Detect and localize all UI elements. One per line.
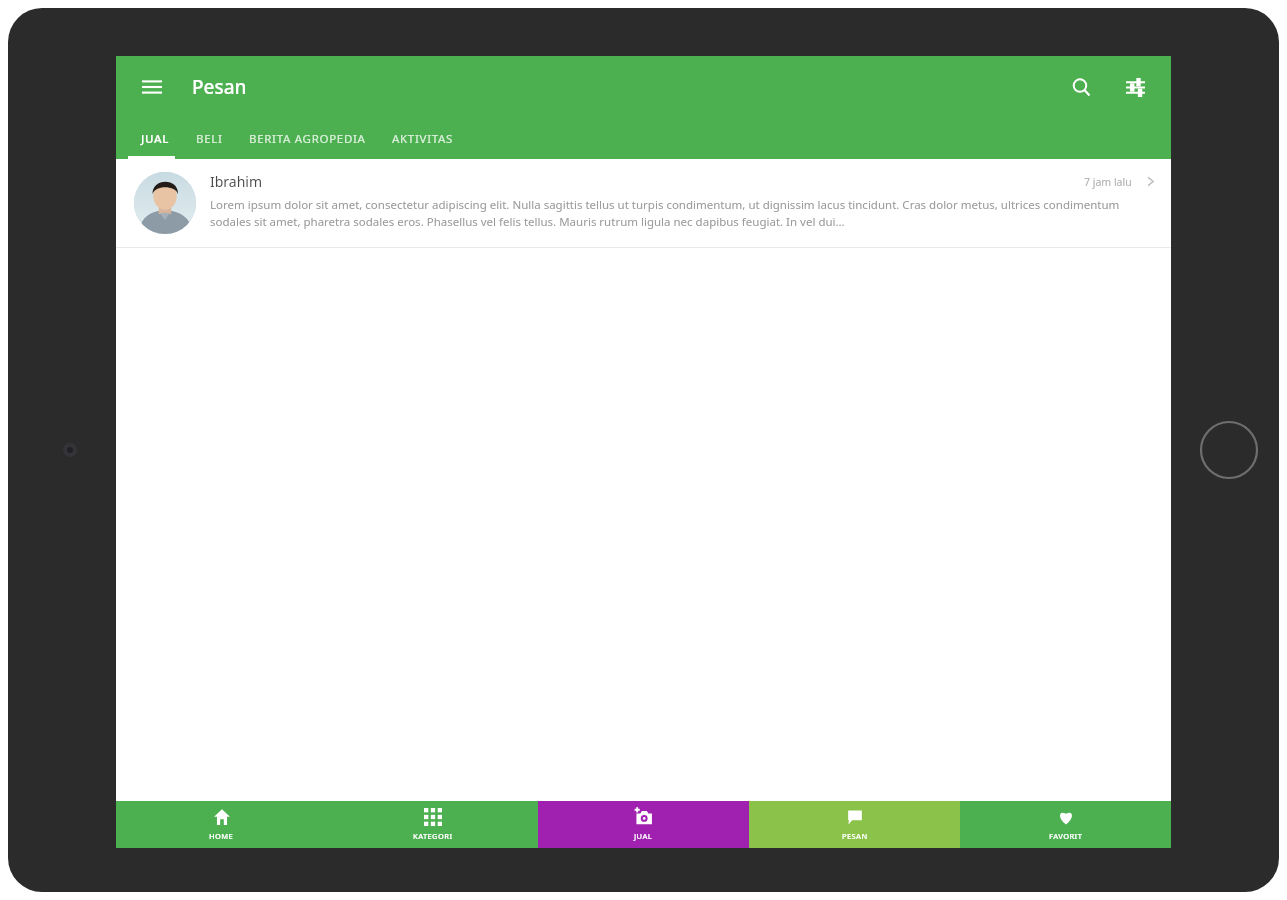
button[interactable]: BERITA AGROPEDIA [236,118,379,159]
staticText: Lorem ipsum dolor sit amet, consectetur … [210,197,1157,230]
staticText: AKTIVITAS [392,131,454,147]
staticText: BERITA AGROPEDIA [249,131,366,147]
button[interactable]: Ibrahim [116,159,1171,247]
button[interactable]: AKTIVITAS [379,118,467,159]
button[interactable]: Open navigation menu [130,65,174,109]
staticText: PESAN [842,831,868,841]
staticText: JUAL [141,131,170,147]
button[interactable]: KATEGORI [327,801,538,848]
staticText: Pesan [192,74,247,100]
button[interactable]: Search [1059,65,1103,109]
button[interactable]: PESAN [749,801,960,848]
button[interactable]: JUAL [538,801,749,848]
staticText: JUAL [634,831,653,841]
button[interactable]: HOME [116,801,327,848]
button[interactable]: FAVORIT [960,801,1171,848]
staticText: FAVORIT [1049,831,1083,841]
button[interactable]: JUAL [128,118,183,159]
button[interactable]: BELI [183,118,236,159]
staticText: HOME [209,831,234,841]
staticText: 7 jam lalu [1084,175,1132,189]
staticText: KATEGORI [413,831,453,841]
button[interactable]: Filter settings [1113,65,1157,109]
staticText: Ibrahim [210,172,1084,191]
staticText: BELI [196,131,223,147]
